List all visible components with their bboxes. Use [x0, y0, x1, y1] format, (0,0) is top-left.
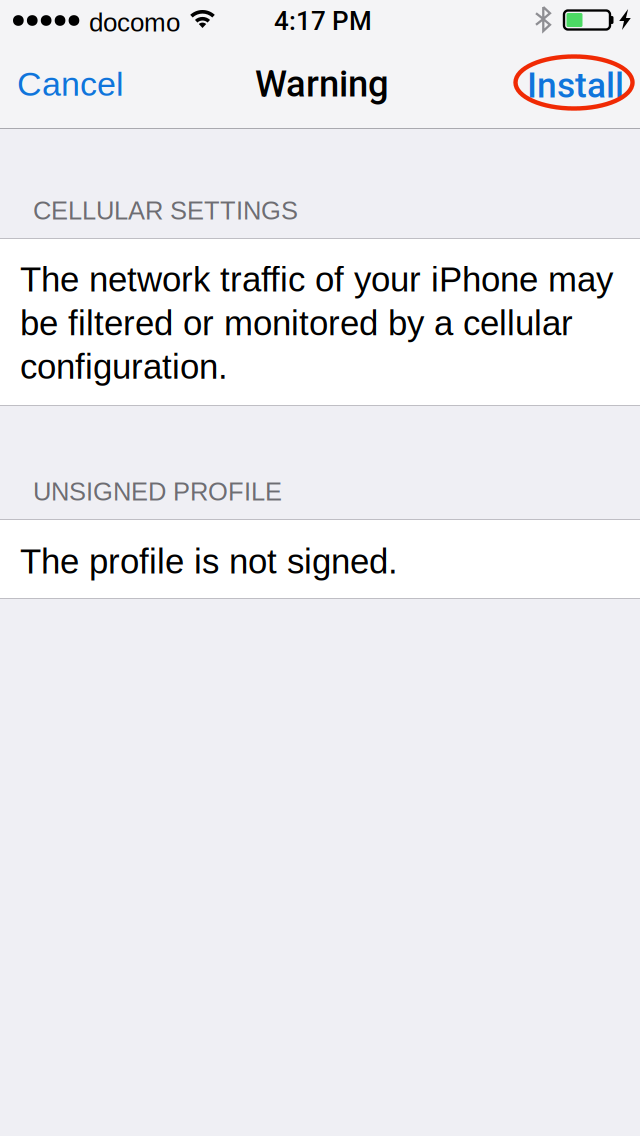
- staticText: UNSIGNED PROFILE: [33, 477, 282, 506]
- staticText: Warning: [255, 63, 389, 105]
- button[interactable]: Cancel: [0, 40, 140, 128]
- staticText: Install: [527, 65, 624, 106]
- staticText: The profile is not signed.: [20, 542, 398, 581]
- staticText: CELLULAR SETTINGS: [33, 196, 298, 225]
- staticText: Cancel: [17, 65, 124, 103]
- staticText: 4:17 PM: [274, 6, 372, 36]
- staticText: docomo: [89, 8, 180, 37]
- button[interactable]: Install: [513, 40, 640, 128]
- staticText: The network traffic of your iPhone may b…: [20, 260, 613, 386]
